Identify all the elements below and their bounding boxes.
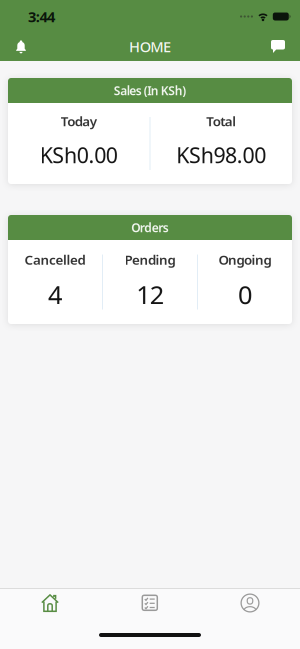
button[interactable]: Orders	[100, 589, 200, 617]
staticText: KSh0.00	[40, 141, 118, 169]
button[interactable]: Home	[0, 589, 100, 617]
staticText: Pending	[124, 251, 175, 268]
staticText: Total	[206, 112, 236, 130]
staticText: 0	[238, 278, 252, 311]
button[interactable]: Profile	[200, 589, 300, 617]
button[interactable]: Notifications	[0, 33, 27, 59]
staticText: Today	[61, 112, 97, 130]
staticText: KSh98.00	[176, 141, 266, 169]
staticText: 12	[136, 278, 164, 311]
staticText: Orders	[131, 219, 169, 235]
staticText: HOME	[129, 37, 171, 56]
button[interactable]: Messages	[271, 34, 300, 59]
staticText: Ongoing	[218, 251, 271, 268]
staticText: Cancelled	[24, 251, 85, 268]
staticText: 4	[48, 278, 62, 311]
staticText: Sales (In KSh)	[114, 82, 186, 98]
staticText: 3:44	[28, 7, 55, 26]
